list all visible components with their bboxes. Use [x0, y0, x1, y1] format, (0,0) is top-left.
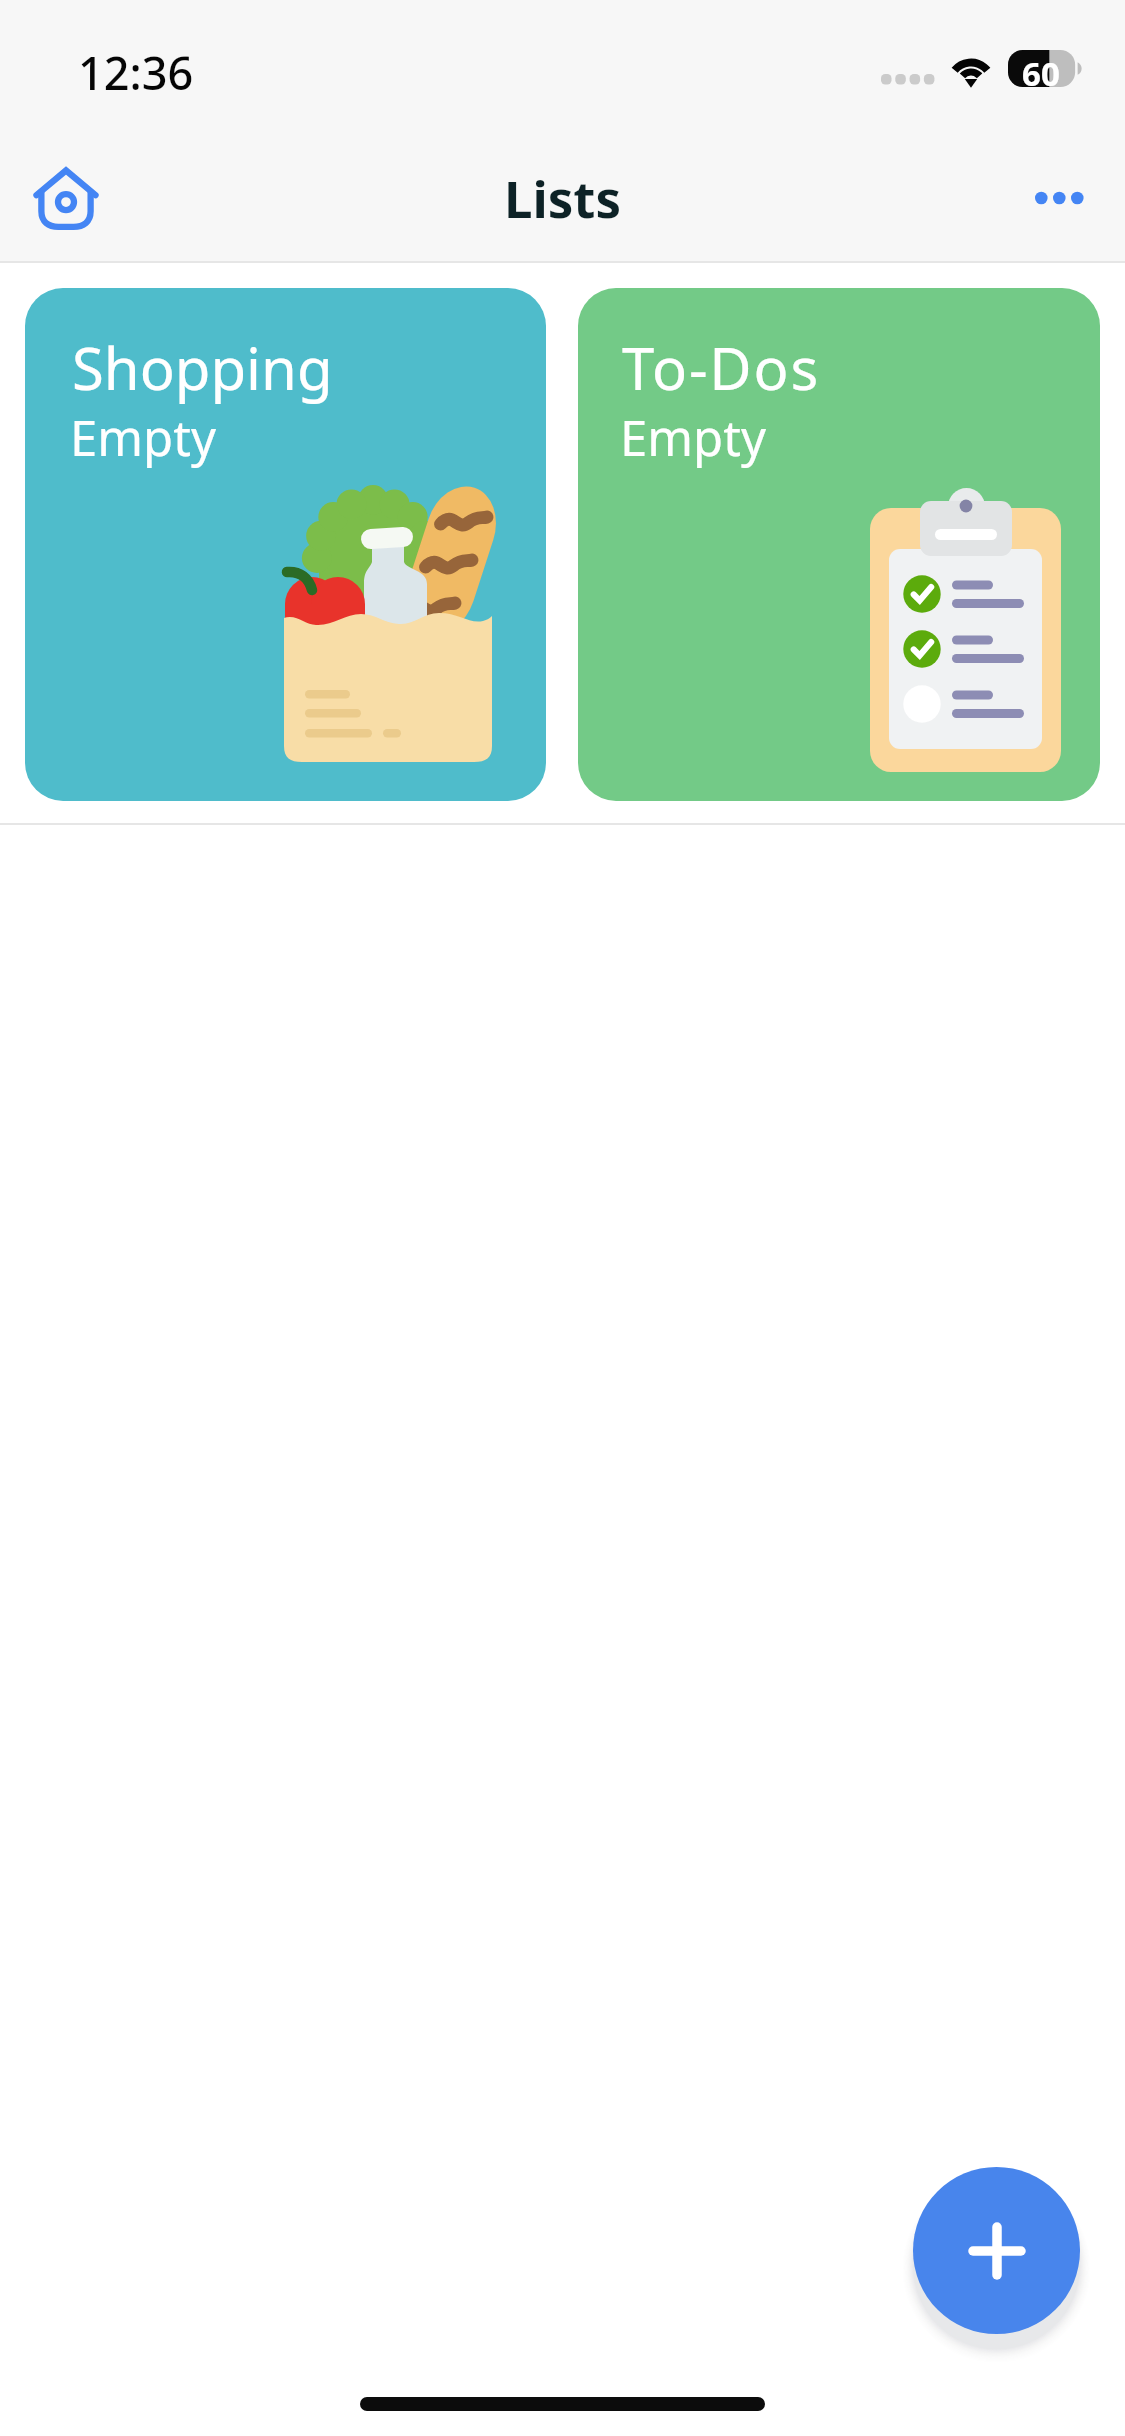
staticText: 12:36: [78, 42, 194, 103]
button[interactable]: More options: [1016, 149, 1108, 247]
button[interactable]: Shopping: [25, 288, 546, 801]
staticText: Lists: [504, 163, 622, 232]
button[interactable]: Add new list: [913, 2167, 1080, 2334]
staticText: Empty: [620, 404, 766, 471]
staticText: 60: [1022, 51, 1060, 88]
staticText: Empty: [70, 404, 216, 471]
staticText: Shopping: [72, 328, 333, 407]
button[interactable]: To-Dos: [578, 288, 1100, 801]
staticText: To-Dos: [622, 328, 820, 407]
button[interactable]: Home: [12, 138, 118, 256]
